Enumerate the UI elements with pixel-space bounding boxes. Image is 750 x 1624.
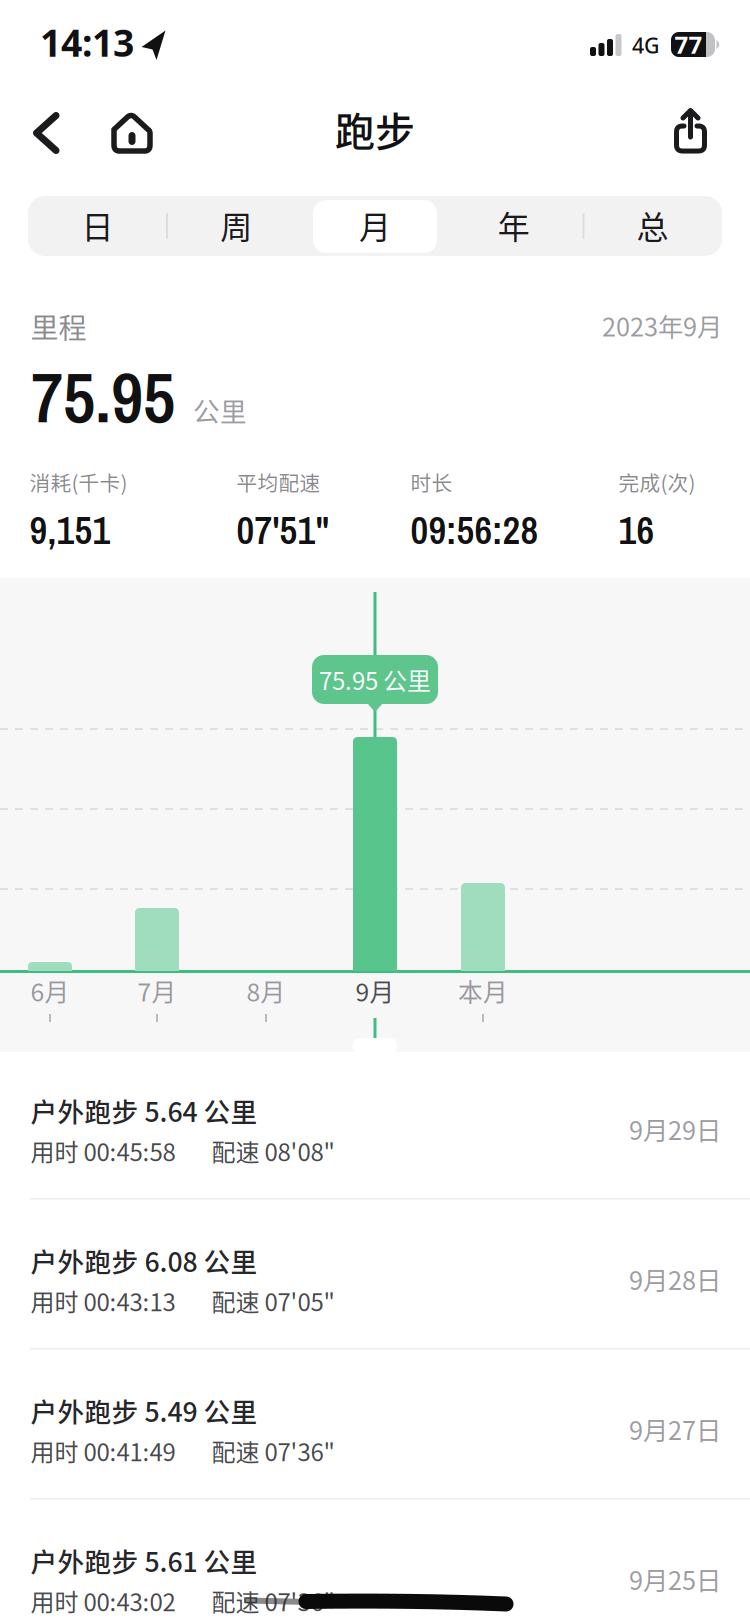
staticText: 6月 [30,973,69,1009]
staticText: 公里 [193,391,247,429]
staticText: 里程 [30,306,86,346]
staticText: 配速 08'08" [211,1133,334,1168]
button[interactable]: 日 [28,196,167,254]
button[interactable]: Home [0,0,153,155]
staticText: 8月 [246,973,285,1009]
staticText: 用时 00:43:13 [30,1283,175,1318]
staticText: 户外跑步 5.49 公里 [30,1391,257,1430]
staticText: 年 [498,202,530,248]
staticText: 7月 [137,973,176,1009]
button[interactable]: 户外跑步 5.49 公里 [0,1352,750,1502]
staticText: 时长 [410,467,452,497]
button[interactable]: 户外跑步 5.61 公里 [0,1502,750,1624]
staticText: 16 [618,504,654,556]
button[interactable]: 年 [444,196,583,254]
staticText: 9月29日 [629,1110,721,1147]
staticText: 月 [359,202,391,248]
staticText: 日 [81,202,113,248]
staticText: 9月28日 [629,1260,721,1297]
staticText: 09:56:28 [410,504,538,556]
button[interactable]: 总 [583,196,722,254]
button[interactable]: 月 [306,196,444,254]
staticText: 4G [632,31,660,59]
button[interactable]: Share [0,0,707,153]
staticText: 07'51" [236,504,329,556]
staticText: 配速 07'36" [211,1583,334,1618]
staticText: 户外跑步 5.61 公里 [30,1541,257,1580]
staticText: 跑步 [335,100,415,158]
staticText: 户外跑步 6.08 公里 [30,1241,257,1280]
button[interactable]: 户外跑步 5.64 公里 [0,1052,750,1202]
staticText: 本月 [458,973,508,1009]
staticText: 总 [637,202,669,248]
staticText: 周 [220,202,252,248]
staticText: 户外跑步 5.64 公里 [30,1091,257,1130]
staticText: 9,151 [29,504,110,556]
staticText: 75.95 [31,349,175,444]
staticText: 用时 00:41:49 [30,1433,175,1468]
staticText: 9月25日 [629,1560,721,1597]
button[interactable]: 户外跑步 6.08 公里 [0,1202,750,1352]
staticText: 消耗(千卡) [29,467,127,497]
staticText: 配速 07'36" [211,1433,334,1468]
button[interactable]: 周 [167,196,306,254]
staticText: 77 [674,29,702,60]
staticText: 9月27日 [629,1410,721,1447]
staticText: 平均配速 [236,467,320,497]
staticText: 用时 00:45:58 [30,1133,175,1168]
staticText: 配速 07'05" [211,1283,334,1318]
staticText: 9月 [355,973,394,1009]
button[interactable]: Back [0,0,60,154]
staticText: 75.95 公里 [319,662,431,697]
staticText: 完成(次) [618,467,695,497]
staticText: 2023年9月 [602,307,722,344]
staticText: 14:13 [40,17,134,67]
staticText: 用时 00:43:02 [30,1583,175,1618]
